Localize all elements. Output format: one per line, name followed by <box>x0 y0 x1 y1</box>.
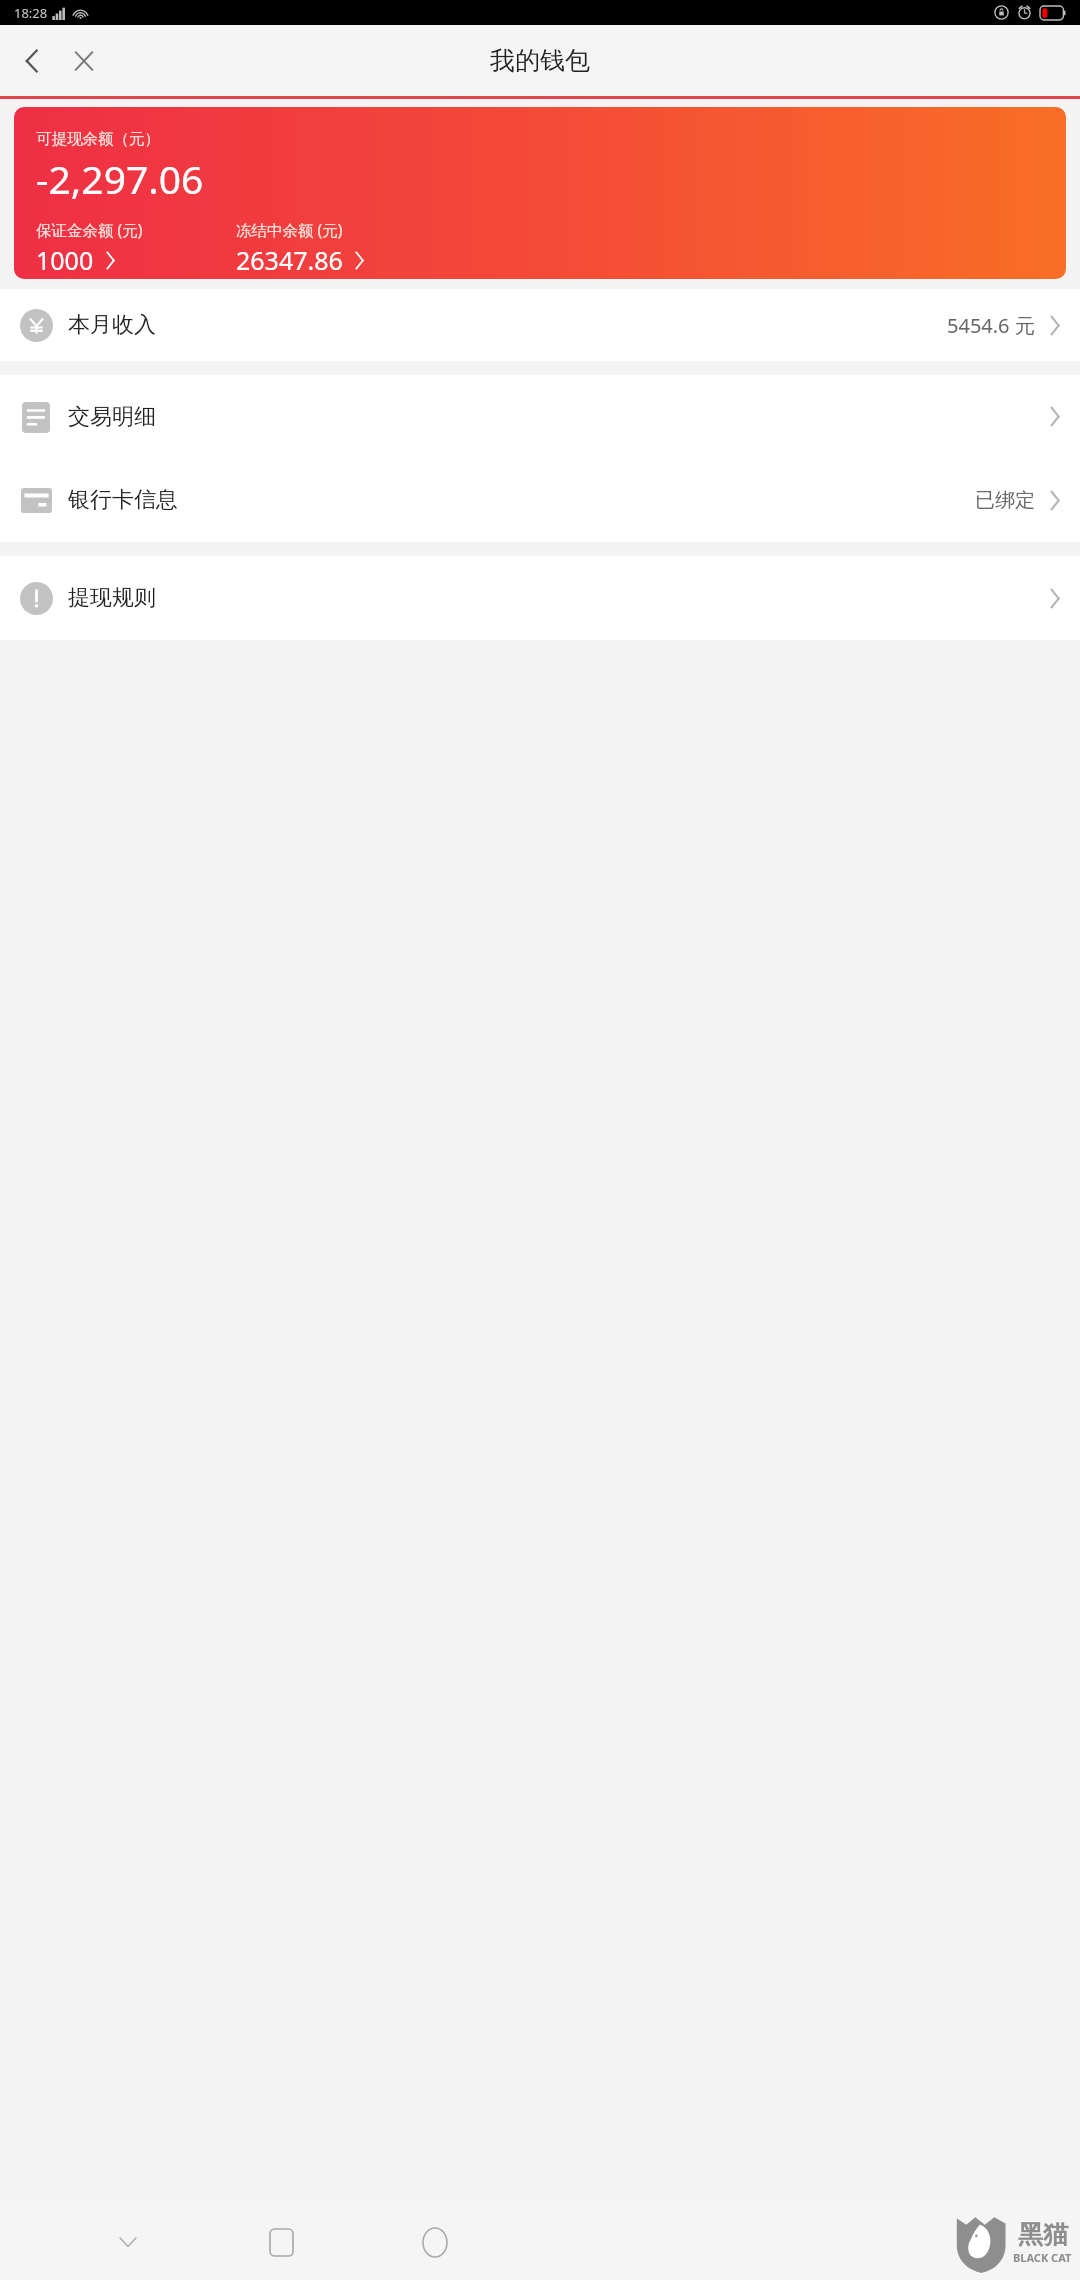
staticText: 1000 <box>36 243 94 277</box>
button[interactable]: 提现规则 <box>0 556 1080 640</box>
button[interactable]: 保证金余额 (元) <box>36 219 236 277</box>
staticText: -2,297.06 <box>36 152 204 205</box>
staticText: 提现规则 <box>68 584 156 612</box>
button[interactable]: Home <box>409 2216 461 2268</box>
button[interactable]: Recents <box>255 2216 307 2268</box>
staticText: 保证金余额 (元) <box>36 219 143 240</box>
staticText: 冻结中余额 (元) <box>236 219 343 240</box>
button[interactable]: 可提现余额（元） <box>14 107 1066 279</box>
button[interactable]: 交易明细 <box>0 375 1080 458</box>
staticText: 黑猫 <box>1018 2219 1068 2250</box>
button[interactable]: Back <box>6 35 58 87</box>
button[interactable]: 本月收入 <box>0 289 1080 361</box>
staticText: 本月收入 <box>68 311 156 339</box>
staticText: 26347.86 <box>236 243 343 277</box>
staticText: 18:28 <box>14 4 48 22</box>
staticText: 交易明细 <box>68 403 156 431</box>
button[interactable]: 冻结中余额 (元) <box>236 219 365 277</box>
button[interactable]: 银行卡信息 <box>0 458 1080 542</box>
button[interactable]: Back <box>102 2216 154 2268</box>
staticText: BLACK CAT <box>1013 2250 1072 2265</box>
button[interactable]: Close <box>58 35 110 87</box>
staticText: 可提现余额（元） <box>36 129 160 149</box>
staticText: 5454.6 元 <box>947 312 1035 339</box>
staticText: 银行卡信息 <box>68 486 178 514</box>
staticText: 已绑定 <box>975 488 1035 513</box>
staticText: 我的钱包 <box>490 45 590 76</box>
